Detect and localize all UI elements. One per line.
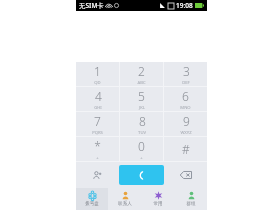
- staticText: 2: [138, 63, 145, 79]
- staticText: 常用: [153, 201, 163, 207]
- staticText: 联系人: [118, 201, 132, 207]
- staticText: 4: [95, 88, 102, 104]
- button[interactable]: Call: [119, 165, 164, 185]
- button[interactable]: 8: [120, 112, 163, 136]
- staticText: MNO: [180, 105, 191, 111]
- button[interactable]: 拨号盘: [76, 188, 108, 210]
- staticText: 5: [138, 88, 145, 104]
- staticText: +: [140, 155, 143, 161]
- button[interactable]: 7: [76, 112, 119, 136]
- staticText: 6: [182, 88, 189, 104]
- button[interactable]: Delete: [165, 162, 207, 188]
- button[interactable]: Add contact: [76, 162, 118, 188]
- button[interactable]: 6: [164, 87, 207, 111]
- staticText: 8: [139, 113, 146, 129]
- button[interactable]: 5: [120, 87, 163, 111]
- button[interactable]: 3: [164, 62, 207, 86]
- button[interactable]: 9: [164, 112, 207, 136]
- staticText: ABC: [137, 80, 146, 86]
- staticText: GHI: [94, 105, 102, 111]
- staticText: JKL: [139, 105, 145, 111]
- staticText: *: [94, 138, 101, 154]
- button[interactable]: *: [76, 137, 119, 161]
- staticText: +: [96, 155, 99, 161]
- button[interactable]: 常用: [141, 188, 174, 210]
- staticText: 9: [183, 113, 190, 129]
- staticText: #: [182, 141, 190, 157]
- button[interactable]: #: [164, 137, 207, 161]
- staticText: 0: [138, 138, 145, 154]
- button[interactable]: 1: [76, 62, 119, 86]
- staticText: TUV: [138, 130, 146, 136]
- staticText: PQRS: [92, 130, 103, 136]
- staticText: 3: [183, 63, 190, 79]
- staticText: 拨号盘: [85, 201, 99, 207]
- staticText: 群组: [186, 201, 196, 207]
- staticText: 1: [94, 63, 101, 79]
- button[interactable]: 联系人: [108, 188, 141, 210]
- staticText: 无SIM卡: [79, 1, 104, 10]
- staticText: 19:08: [176, 1, 193, 10]
- button[interactable]: 群组: [174, 188, 207, 210]
- staticText: QD: [94, 80, 101, 86]
- button[interactable]: 2: [120, 62, 163, 86]
- staticText: 7: [94, 113, 101, 129]
- button[interactable]: 0: [120, 137, 163, 161]
- staticText: WXYZ: [180, 130, 192, 136]
- staticText: DEF: [182, 80, 190, 86]
- button[interactable]: 4: [76, 87, 119, 111]
